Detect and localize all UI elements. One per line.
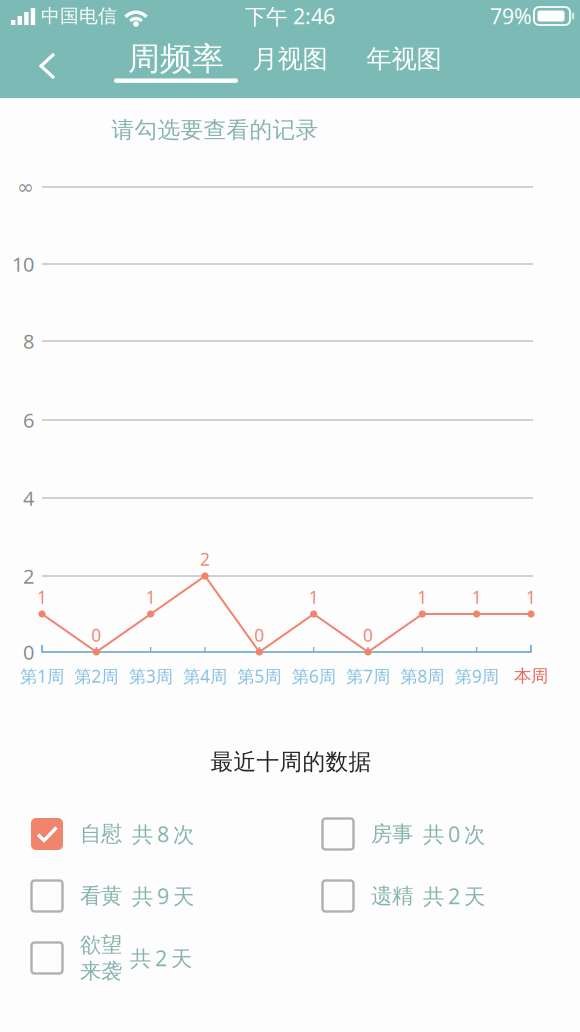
button[interactable]: 返回 xyxy=(13,40,83,92)
staticText: 周频率 xyxy=(128,39,224,78)
staticText: 第3周 xyxy=(129,664,173,687)
staticText: 下午 2:46 xyxy=(245,2,335,30)
staticText: 本周 xyxy=(514,665,548,687)
staticText: 0 xyxy=(363,623,373,646)
staticText: 1 xyxy=(417,585,427,608)
staticText: 1 xyxy=(526,585,536,608)
staticText: 第4周 xyxy=(183,664,227,687)
staticText: 房事 xyxy=(371,821,413,847)
staticText: 中国电信 xyxy=(41,4,117,27)
staticText: 第1周 xyxy=(20,664,64,687)
staticText: 第2周 xyxy=(74,664,118,687)
staticText: 年视图 xyxy=(366,43,441,74)
staticText: ∞ xyxy=(17,176,34,198)
staticText: 共 2 天 xyxy=(423,882,485,910)
staticText: 来袭 xyxy=(80,958,122,984)
staticText: 6 xyxy=(23,407,34,433)
staticText: 请勾选要查看的记录 xyxy=(111,116,318,144)
staticText: 第9周 xyxy=(455,664,499,687)
button[interactable]: 看黄 xyxy=(31,865,322,927)
button[interactable]: 年视图 xyxy=(358,35,449,82)
staticText: 4 xyxy=(23,485,34,511)
staticText: 月视图 xyxy=(252,43,327,74)
staticText: 自慰 xyxy=(80,821,122,847)
staticText: 1 xyxy=(309,585,319,608)
staticText: 1 xyxy=(37,585,47,608)
staticText: 1 xyxy=(472,585,482,608)
staticText: 共 0 次 xyxy=(423,820,485,848)
staticText: 共 9 天 xyxy=(132,882,194,910)
staticText: 看黄 xyxy=(80,883,122,909)
staticText: 第6周 xyxy=(292,664,336,687)
staticText: 1 xyxy=(146,585,156,608)
staticText: 8 xyxy=(23,328,34,354)
staticText: 0 xyxy=(254,623,264,646)
staticText: 共 2 天 xyxy=(130,944,192,972)
button[interactable]: 周频率 xyxy=(108,35,244,83)
button[interactable]: 欲望 xyxy=(31,927,322,989)
staticText: 0 xyxy=(91,623,101,646)
button[interactable]: 月视图 xyxy=(244,35,335,82)
staticText: 第8周 xyxy=(400,664,444,687)
staticText: 0 xyxy=(23,639,34,665)
staticText: 共 8 次 xyxy=(132,820,194,848)
staticText: 79% xyxy=(490,2,532,30)
staticText: 遗精 xyxy=(371,883,413,909)
staticText: 欲望 xyxy=(80,932,122,958)
staticText: 10 xyxy=(12,251,34,277)
staticText: 最近十周的数据 xyxy=(210,748,371,776)
staticText: 第7周 xyxy=(346,664,390,687)
button[interactable]: 房事 xyxy=(322,803,571,865)
staticText: 2 xyxy=(200,547,210,570)
button[interactable]: 自慰 xyxy=(31,803,322,865)
button[interactable]: 遗精 xyxy=(322,865,571,927)
staticText: 第5周 xyxy=(237,664,281,687)
staticText: 2 xyxy=(23,563,34,589)
